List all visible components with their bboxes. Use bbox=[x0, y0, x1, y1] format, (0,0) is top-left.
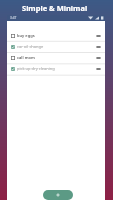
button[interactable]: More options bbox=[94, 41, 103, 52]
staticText: car oil change bbox=[17, 44, 44, 49]
button[interactable]: pick up dry cleaning bbox=[7, 63, 105, 74]
button[interactable]: buy eggs bbox=[7, 30, 105, 41]
button[interactable]: call mom bbox=[7, 52, 105, 63]
staticText: buy eggs bbox=[17, 33, 35, 38]
staticText: pick up dry cleaning bbox=[17, 66, 55, 71]
staticText: 3:47 bbox=[10, 16, 17, 20]
button[interactable]: More options bbox=[94, 52, 103, 63]
button[interactable]: Add new task bbox=[43, 190, 73, 200]
button[interactable]: car oil change bbox=[7, 41, 105, 52]
button[interactable]: More options bbox=[94, 30, 103, 41]
button[interactable]: More options bbox=[94, 63, 103, 74]
staticText: Simple & Minimal bbox=[22, 3, 88, 13]
staticText: call mom bbox=[17, 55, 35, 60]
